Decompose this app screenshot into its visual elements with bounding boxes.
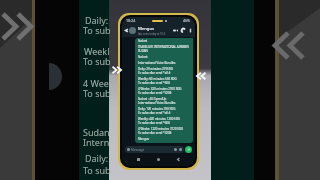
staticText: Weekly: 420 minutes 1200 SDG [138,117,180,121]
staticText: Sudani : 4G SpeedUp [138,97,167,101]
staticText: To subscribe send *all # [138,111,171,115]
staticText: 46% [183,18,191,23]
staticText: To sub [83,55,111,67]
staticText: To sub [83,87,111,99]
button[interactable]: Home [155,156,162,163]
staticText: Message [131,148,145,152]
staticText: Sudani [138,39,148,43]
button[interactable]: Back [124,28,129,33]
staticText: Intern [83,136,110,148]
staticText: To subscribe send *60# [138,81,170,85]
staticText: To sub [83,24,111,36]
button[interactable]: Voice message [185,146,192,153]
staticText: 10:24 [126,18,136,23]
staticText: To subscribe send *320# [138,131,172,135]
staticText: Sudani: [138,55,149,59]
staticText: 4 Weeks: 320 minutes 2100 SDG [138,87,182,91]
button[interactable]: Scroll left [197,72,206,80]
button[interactable]: Message [125,146,184,153]
button[interactable]: Recents [135,156,142,163]
staticText: Daily: 20 minutes 275SDG [138,67,173,71]
button[interactable]: Back [175,156,182,163]
staticText: Daily: [85,152,109,164]
staticText: To sub [83,164,111,176]
button[interactable]: Video call [173,28,178,33]
staticText: Sudan [83,126,110,138]
staticText: TRAVELLER INTERNATIONAL AIRWAYS [138,45,189,49]
staticText: Daily: [85,14,109,26]
staticText: Mengus [138,26,155,32]
staticText: International Voice Bundles [138,61,176,65]
staticText: Mengus [138,137,149,141]
staticText: To subscribe send *all # [138,71,171,75]
staticText: Weekly: 60 minutes 550 SDG [138,77,177,81]
staticText: SUDAN [138,49,148,53]
staticText: 4 Weeks: 1220 minutes 3120 SDG [138,127,184,131]
button[interactable]: Scroll right [112,66,121,74]
staticText: 4 Wee [83,77,109,89]
button[interactable]: Next [1,12,32,42]
staticText: International Voice Bundles [138,101,176,105]
button[interactable]: More options [188,28,193,33]
staticText: To subscribe send *320# [138,91,172,95]
staticText: last seen today at 10:2 [138,32,166,36]
button[interactable]: Call [181,28,186,33]
staticText: To subscribe send *60# [138,121,170,125]
staticText: Daily: 120 minutes 350 SDG [138,107,176,111]
staticText: Weekl [84,45,110,57]
button[interactable]: Previous [277,31,305,58]
